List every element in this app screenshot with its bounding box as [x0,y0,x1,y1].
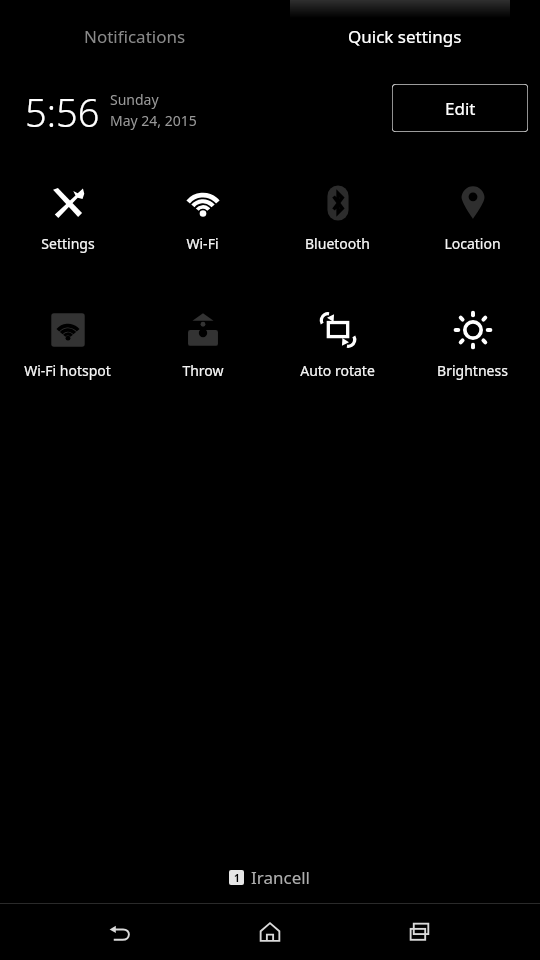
button[interactable]: Throw [135,302,270,394]
button[interactable]: Recents [380,904,460,960]
button[interactable]: Settings [0,175,135,267]
button[interactable]: Brightness [405,302,540,394]
staticText: Auto rotate [300,361,375,380]
button[interactable]: Edit [392,84,528,132]
button[interactable]: Home [230,904,310,960]
staticText: Location [444,234,501,253]
button[interactable]: Location [405,175,540,267]
button[interactable]: Auto rotate [270,302,405,394]
staticText: Throw [182,361,224,380]
staticText: May 24, 2015 [110,111,197,130]
staticText: 5:56 [25,86,100,138]
staticText: Bluetooth [305,234,370,253]
staticText: Quick settings [348,25,462,48]
button[interactable]: Bluetooth [270,175,405,267]
button[interactable]: Wi-Fi hotspot [0,302,135,394]
staticText: Sunday [110,90,159,109]
staticText: Edit [445,97,476,120]
staticText: Brightness [437,361,508,380]
button[interactable]: Back [80,904,160,960]
button[interactable]: Notifications [0,14,270,58]
staticText: Wi-Fi [186,234,219,253]
staticText: Settings [41,234,95,253]
button[interactable]: Quick settings [270,14,540,58]
staticText: 1 [234,871,240,885]
staticText: Irancell [251,866,311,889]
button[interactable]: Wi-Fi [135,175,270,267]
staticText: Wi-Fi hotspot [24,361,111,380]
staticText: Notifications [84,25,186,48]
